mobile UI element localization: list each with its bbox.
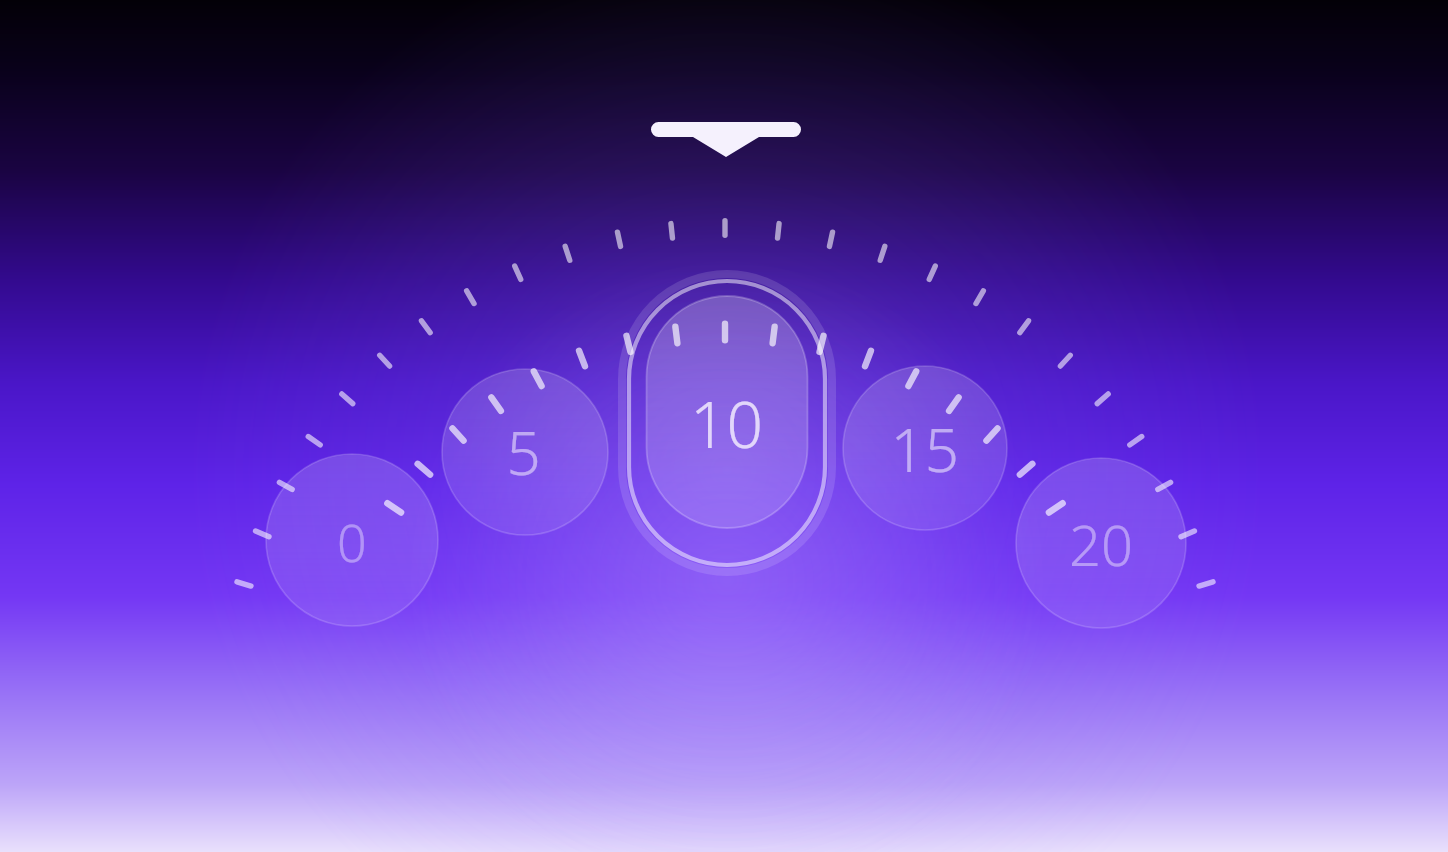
button[interactable]: Duration picker, 10 selected [0, 0, 1448, 852]
